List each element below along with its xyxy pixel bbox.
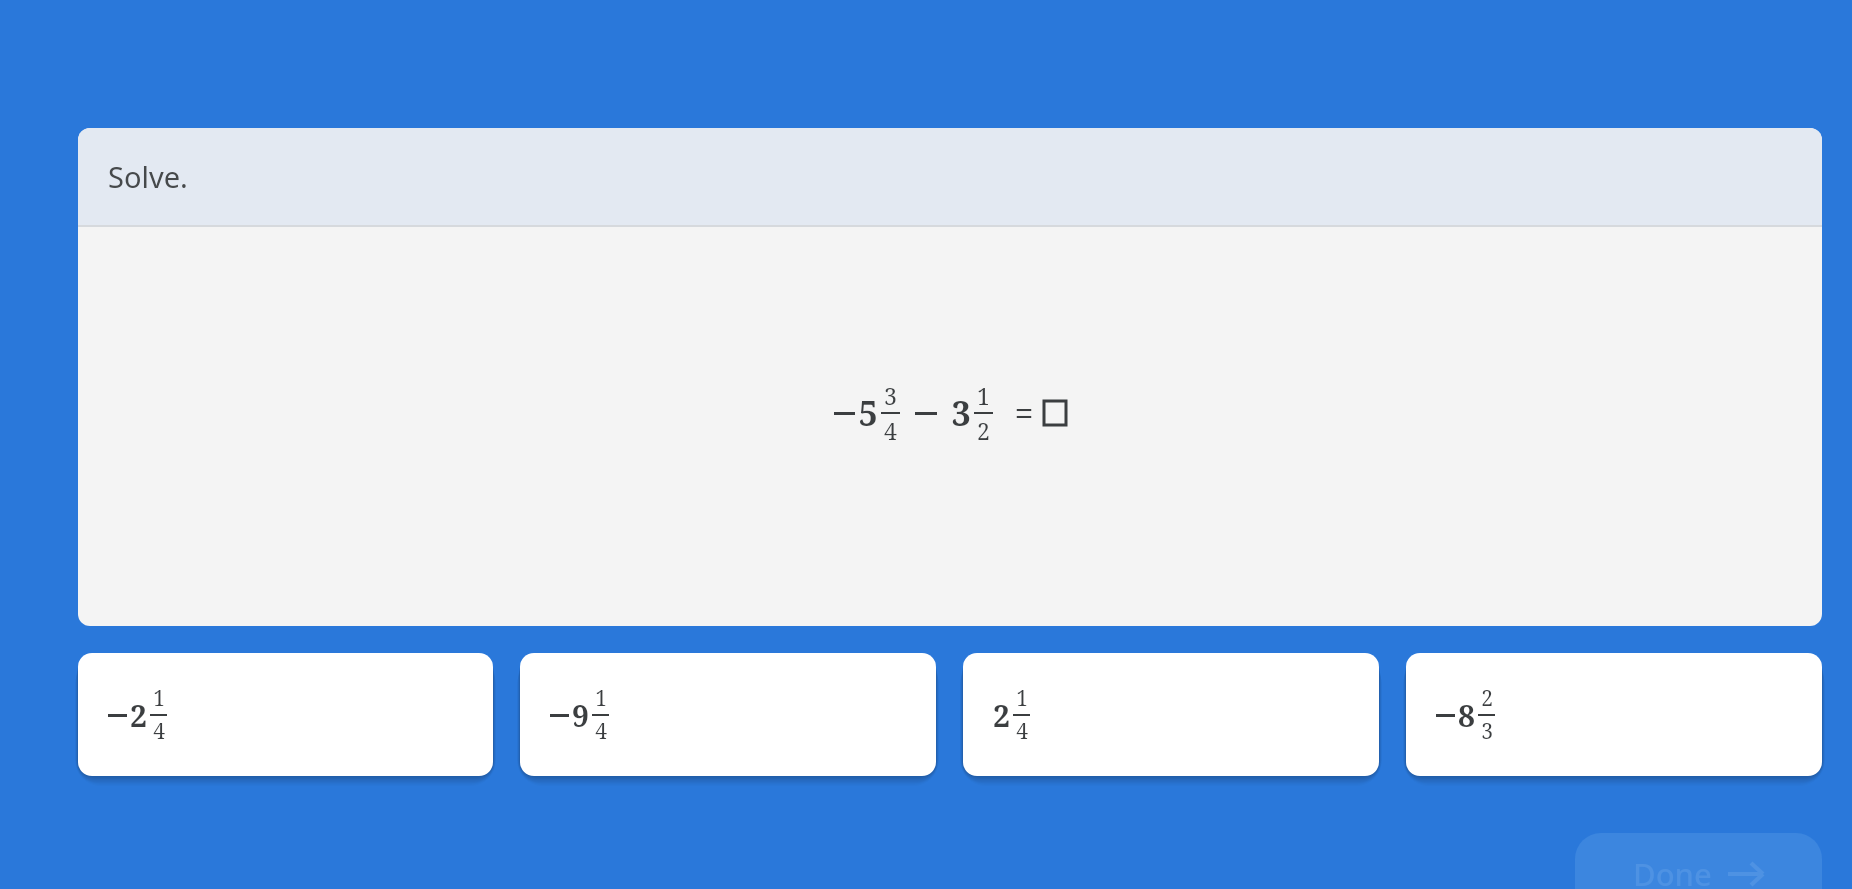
- staticText: 1: [977, 380, 990, 411]
- staticText: =: [1014, 390, 1034, 436]
- staticText: 9: [572, 695, 589, 736]
- staticText: 1: [153, 684, 165, 713]
- staticText: 4: [1016, 717, 1028, 746]
- staticText: 1: [595, 684, 607, 713]
- staticText: 5: [858, 390, 878, 436]
- staticText: 2: [130, 695, 147, 736]
- staticText: 2: [1481, 684, 1493, 713]
- button[interactable]: Done: [1575, 833, 1822, 889]
- staticText: 3: [884, 380, 897, 411]
- staticText: 4: [595, 717, 607, 746]
- button[interactable]: 2: [963, 653, 1379, 776]
- staticText: 4: [153, 717, 165, 746]
- staticText: Done: [1633, 853, 1712, 889]
- button[interactable]: 8: [1406, 653, 1822, 776]
- staticText: Solve.: [108, 157, 188, 196]
- button[interactable]: 9: [520, 653, 936, 776]
- button[interactable]: 2: [78, 653, 493, 776]
- staticText: 1: [1016, 684, 1028, 713]
- staticText: 2: [977, 415, 990, 446]
- staticText: 3: [951, 390, 971, 436]
- staticText: 4: [884, 415, 897, 446]
- staticText: 3: [1481, 717, 1493, 746]
- staticText: 2: [993, 695, 1010, 736]
- staticText: 8: [1458, 695, 1475, 736]
